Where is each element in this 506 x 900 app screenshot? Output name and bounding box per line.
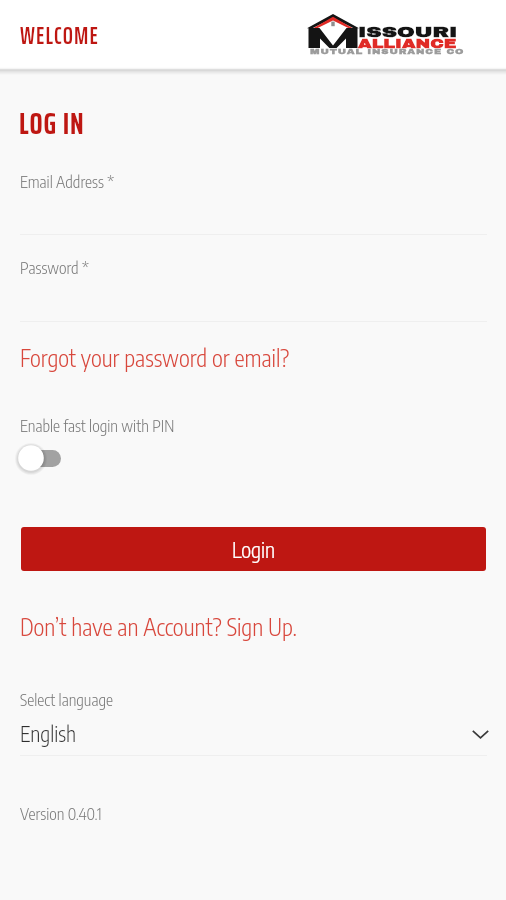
button[interactable]: Enable fast login with PIN xyxy=(15,442,65,474)
other: Select language xyxy=(472,730,489,739)
staticText: English xyxy=(20,720,77,746)
staticText: Enable fast login with PIN xyxy=(20,416,175,436)
staticText: WELCOME xyxy=(20,17,99,55)
staticText: Select language xyxy=(20,690,113,710)
button[interactable]: Don’t have an Account? Sign Up. xyxy=(20,612,297,641)
staticText: LOG IN xyxy=(19,99,85,148)
staticText: Forgot your password or email? xyxy=(20,343,290,372)
staticText: Version 0.40.1 xyxy=(20,804,102,824)
staticText: MUTUAL INSURANCE CO xyxy=(310,48,465,56)
staticText: ALLIANCE xyxy=(358,37,456,51)
staticText: Password * xyxy=(20,258,89,278)
button[interactable]: English xyxy=(20,718,487,748)
button[interactable]: Forgot your password or email? xyxy=(20,343,290,372)
staticText: Email Address * xyxy=(20,172,115,192)
staticText: ISSOURI xyxy=(358,25,458,40)
staticText: Don’t have an Account? Sign Up. xyxy=(20,612,297,641)
staticText: Login xyxy=(232,536,276,562)
button[interactable]: Login xyxy=(21,527,486,571)
